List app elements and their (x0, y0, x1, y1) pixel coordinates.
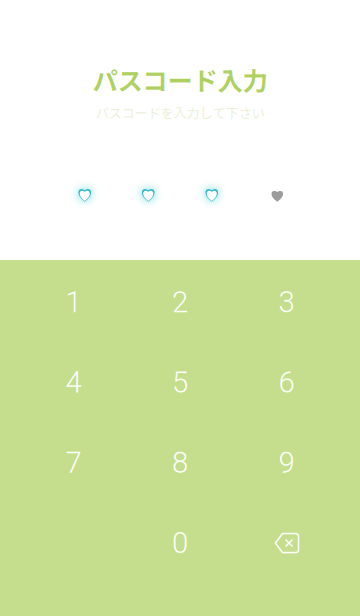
staticText: 6 (278, 365, 294, 400)
staticText: 2 (172, 285, 188, 319)
button[interactable]: Delete (233, 503, 340, 583)
staticText: 7 (65, 446, 81, 480)
staticText: パスコード入力 (92, 61, 267, 98)
staticText: 5 (172, 365, 188, 400)
button[interactable]: 2 (127, 262, 233, 342)
button[interactable]: 1 (20, 262, 127, 342)
button[interactable]: 9 (233, 423, 340, 503)
button[interactable]: 8 (127, 423, 233, 503)
staticText: 1 (65, 285, 81, 319)
button[interactable]: 3 (233, 262, 340, 342)
button[interactable]: 0 (127, 503, 233, 583)
button[interactable]: 4 (20, 342, 127, 423)
staticText: 9 (278, 446, 294, 480)
button[interactable]: 7 (20, 423, 127, 503)
staticText: 8 (172, 446, 188, 480)
staticText: 0 (172, 526, 188, 560)
staticText: 4 (65, 365, 81, 400)
staticText: 3 (278, 285, 294, 319)
button[interactable]: 6 (233, 342, 340, 423)
staticText: パスコードを入力して下さい (95, 103, 264, 122)
button[interactable]: 5 (127, 342, 233, 423)
